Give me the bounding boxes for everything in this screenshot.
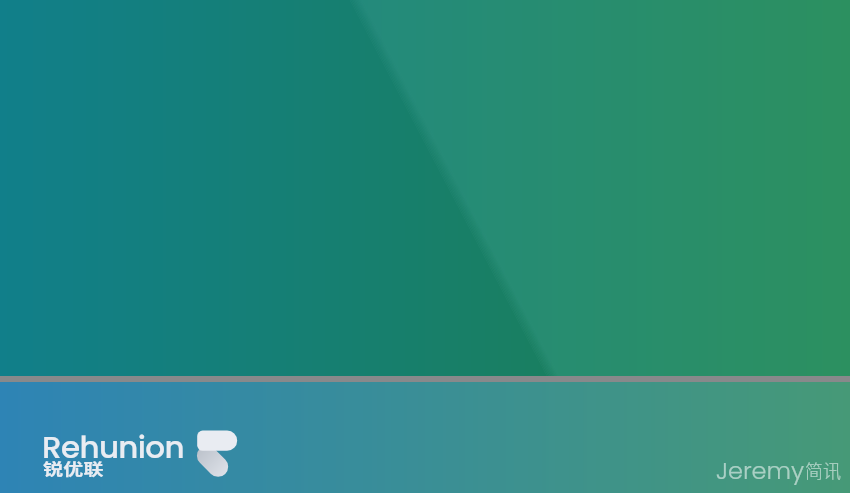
staticText: Jeremy [716, 454, 805, 488]
button[interactable]: Rehunion [40, 424, 190, 476]
staticText: 简讯 [805, 457, 841, 483]
button[interactable]: Rehunion logo [195, 428, 239, 480]
staticText: Rehunion [42, 425, 184, 468]
staticText: 锐优联 [43, 457, 104, 480]
